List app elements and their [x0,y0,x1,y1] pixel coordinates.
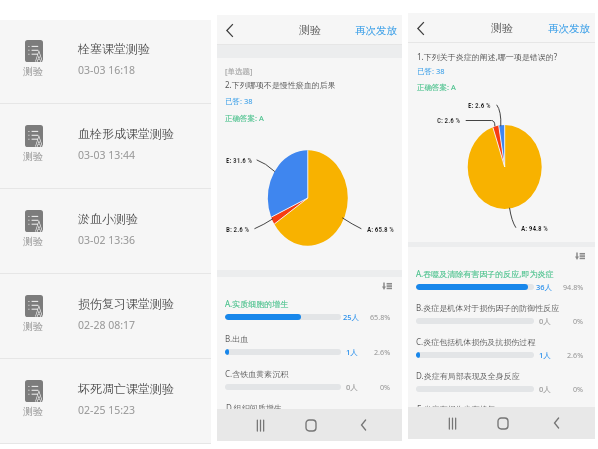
staticText: A.实质细胞的增生 [225,298,289,309]
staticText: 栓塞课堂测验 [78,41,150,56]
staticText: 已答: 38 [417,66,445,76]
staticText: 已答: 38 [225,96,253,106]
button[interactable]: Home [489,407,517,439]
staticText: 坏死凋亡课堂测验 [78,381,174,396]
staticText: 再次发放 [548,22,590,35]
staticText: C: 2.6 % [437,116,461,124]
staticText: 0人 [539,316,551,326]
button[interactable]: 测验 [0,275,211,360]
staticText: 0人 [346,382,358,392]
staticText: E: 2.6 % [468,101,491,109]
button[interactable]: 测验 [0,20,211,105]
staticText: 测验 [23,405,43,418]
staticText: 测验 [23,235,43,248]
button[interactable]: Recent apps [246,409,274,441]
staticText: 0% [380,382,391,392]
button[interactable]: Home [297,409,325,441]
button[interactable]: Sort [382,282,392,290]
button[interactable]: 测验 [0,190,211,275]
button[interactable]: Recent apps [438,407,466,439]
staticText: 03-03 16:18 [78,63,135,77]
staticText: 1.下列关于炎症的阐述,哪一项是错误的? [417,51,558,62]
staticText: 0% [573,316,584,326]
button[interactable]: Back [408,13,432,43]
button[interactable]: Back [217,15,241,45]
staticText: 测验 [299,23,321,37]
staticText: 2.6% [374,347,391,357]
button[interactable]: 再次发放 [543,13,595,43]
staticText: 2.6% [567,350,584,360]
staticText: D.组织间质增生 [226,402,282,413]
staticText: B.炎症是机体对于损伤因子的防御性反应 [416,302,560,313]
button[interactable]: Sort [575,252,585,260]
staticText: 1人 [346,347,358,357]
button[interactable]: Back [349,409,377,441]
staticText: 2.下列哪项不是慢性瘀血的后果 [225,79,336,90]
staticText: [单选题] [225,66,253,76]
staticText: 03-03 13:44 [78,148,135,162]
staticText: A.吞噬及清除有害因子的反应,即为炎症 [416,268,554,279]
staticText: 65.8% [370,312,391,322]
staticText: 测验 [491,21,513,35]
staticText: E.炎症有损伤也有修复 [417,403,496,414]
staticText: 36人 [536,282,553,292]
staticText: 测验 [23,65,43,78]
staticText: 测验 [23,320,43,333]
button[interactable]: 测验 [0,360,211,443]
staticText: E: 31.6 % [226,156,253,164]
staticText: 淤血小测验 [78,211,138,226]
staticText: B: 2.6 % [226,225,249,233]
staticText: 94.8% [563,282,584,292]
staticText: 正确答案: A [225,113,264,123]
staticText: 测验 [23,150,43,163]
staticText: 0人 [539,384,551,394]
button[interactable]: Back [542,407,570,439]
staticText: 1人 [539,350,551,360]
staticText: A: 94.8 % [521,224,548,232]
staticText: 25人 [343,312,360,322]
staticText: 03-02 13:36 [78,233,135,247]
staticText: A: 65.8 % [367,225,394,233]
staticText: 再次发放 [355,24,397,37]
staticText: 02-25 15:23 [78,403,135,417]
button[interactable]: 测验 [0,105,211,190]
staticText: 损伤复习课堂测验 [78,296,174,311]
button[interactable]: 再次发放 [350,15,402,45]
staticText: 正确答案: A [417,82,456,92]
staticText: 血栓形成课堂测验 [78,126,174,141]
staticText: 02-28 08:17 [78,318,135,332]
staticText: 0% [573,384,584,394]
staticText: C.含铁血黄素沉积 [225,368,289,379]
staticText: D.炎症有局部表现及全身反应 [416,370,520,381]
staticText: B.出血 [225,333,249,344]
staticText: C.炎症包括机体损伤及抗损伤过程 [416,336,536,347]
